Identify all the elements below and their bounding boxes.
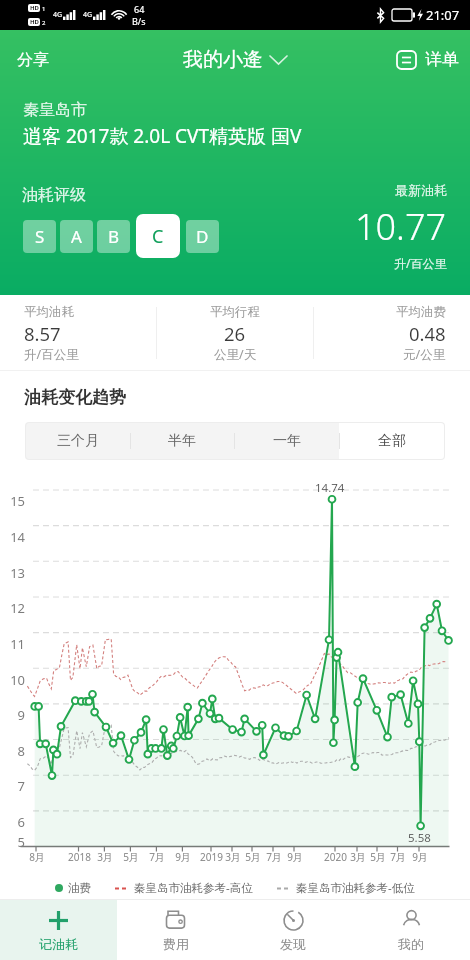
- staticText: 14.74: [315, 480, 345, 496]
- staticText: 10.77: [355, 202, 447, 251]
- staticText: 逍客 2017款 2.0L CVT精英版 国V: [23, 123, 302, 149]
- staticText: 64: [134, 3, 145, 15]
- staticText: 5.58: [408, 830, 431, 846]
- staticText: 三个月: [57, 432, 99, 450]
- staticText: 秦皇岛市油耗参考-低位: [296, 880, 415, 896]
- staticText: 7月: [390, 850, 406, 864]
- button[interactable]: 发现: [234, 900, 352, 960]
- staticText: 我的: [398, 936, 424, 952]
- staticText: 5: [17, 833, 25, 851]
- staticText: 最新油耗: [395, 182, 447, 198]
- staticText: 5月: [123, 850, 139, 864]
- staticText: 7: [17, 777, 25, 795]
- staticText: 升/百公里: [394, 255, 447, 271]
- staticText: 10: [10, 671, 25, 689]
- staticText: 1: [42, 5, 46, 13]
- button[interactable]: D: [186, 220, 219, 253]
- staticText: A: [71, 225, 82, 248]
- staticText: HD: [30, 4, 39, 12]
- staticText: 平均油费: [396, 304, 446, 320]
- button[interactable]: 记油耗: [0, 900, 117, 960]
- staticText: 平均油耗: [24, 304, 74, 320]
- staticText: 4G: [53, 10, 63, 20]
- staticText: 费用: [163, 936, 189, 952]
- staticText: 9月: [412, 850, 428, 864]
- staticText: 发现: [280, 936, 306, 952]
- staticText: 13: [10, 564, 25, 582]
- button[interactable]: 我的小逄: [173, 39, 297, 80]
- staticText: HD: [30, 18, 39, 26]
- staticText: 3月: [225, 850, 241, 864]
- staticText: B/s: [132, 15, 146, 27]
- staticText: 21:07: [426, 6, 460, 24]
- button[interactable]: S: [23, 220, 56, 253]
- staticText: 7月: [149, 850, 165, 864]
- staticText: 5月: [245, 850, 261, 864]
- staticText: 26: [224, 321, 246, 346]
- staticText: 11: [10, 635, 25, 653]
- staticText: 2: [42, 19, 46, 27]
- button[interactable]: 详单: [383, 37, 470, 82]
- button[interactable]: C: [136, 214, 180, 258]
- staticText: D: [196, 225, 209, 248]
- staticText: 0.48: [409, 321, 446, 346]
- staticText: 2020: [324, 850, 347, 864]
- staticText: 2019: [200, 850, 223, 864]
- button[interactable]: 分享: [0, 36, 66, 84]
- staticText: 公里/天: [214, 346, 257, 363]
- staticText: 我的小逄: [183, 47, 263, 72]
- staticText: 9: [17, 706, 25, 724]
- staticText: 元/公里: [403, 346, 446, 363]
- staticText: 2018: [68, 850, 91, 864]
- staticText: 3月: [97, 850, 113, 864]
- staticText: 4G: [83, 10, 93, 20]
- button[interactable]: 费用: [117, 900, 234, 960]
- button[interactable]: 我的: [352, 900, 470, 960]
- staticText: 升/百公里: [24, 346, 79, 363]
- staticText: 9月: [175, 850, 191, 864]
- staticText: 3月: [350, 850, 366, 864]
- staticText: 8: [17, 742, 25, 760]
- staticText: 秦皇岛市: [23, 100, 87, 120]
- staticText: 全部: [378, 432, 406, 450]
- button[interactable]: 一年: [234, 423, 339, 459]
- staticText: S: [35, 225, 45, 248]
- staticText: 半年: [168, 432, 196, 450]
- staticText: 12: [10, 599, 25, 617]
- button[interactable]: 三个月: [26, 423, 130, 459]
- staticText: 8月: [29, 850, 45, 864]
- staticText: 5月: [370, 850, 386, 864]
- staticText: C: [152, 224, 164, 249]
- staticText: 8.57: [24, 321, 61, 346]
- staticText: 油耗变化趋势: [24, 387, 126, 408]
- staticText: 14: [10, 528, 25, 546]
- button[interactable]: 全部: [339, 423, 444, 459]
- staticText: 油费: [68, 881, 91, 895]
- button[interactable]: A: [60, 220, 93, 253]
- staticText: 平均行程: [210, 304, 260, 320]
- staticText: 秦皇岛市油耗参考-高位: [134, 880, 253, 896]
- staticText: 9月: [287, 850, 303, 864]
- staticText: 6: [17, 813, 25, 831]
- staticText: 分享: [17, 50, 49, 70]
- staticText: 详单: [425, 49, 459, 70]
- staticText: 15: [10, 492, 25, 510]
- staticText: B: [108, 225, 120, 248]
- staticText: 油耗评级: [22, 185, 86, 205]
- button[interactable]: B: [97, 220, 130, 253]
- staticText: 7月: [266, 850, 282, 864]
- staticText: 一年: [273, 432, 301, 450]
- button[interactable]: 半年: [130, 423, 234, 459]
- staticText: 记油耗: [39, 936, 78, 952]
